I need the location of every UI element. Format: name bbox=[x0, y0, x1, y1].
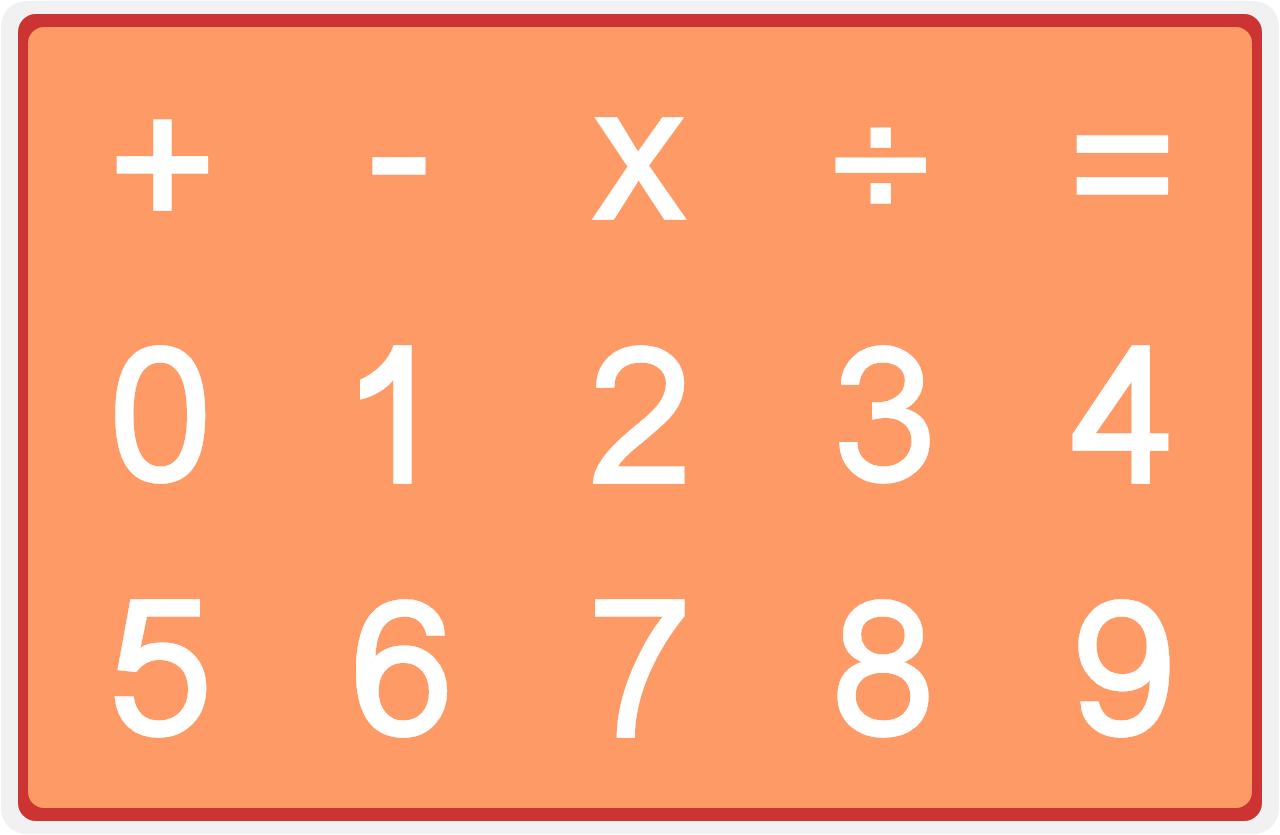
button[interactable]: Nine bbox=[1007, 548, 1252, 808]
button[interactable]: Multiply bbox=[517, 27, 762, 288]
button[interactable]: Two bbox=[517, 288, 762, 548]
button[interactable]: Plus bbox=[28, 27, 272, 288]
button[interactable]: Four bbox=[1007, 288, 1252, 548]
button[interactable]: Divide bbox=[762, 27, 1007, 288]
button[interactable]: Minus bbox=[272, 27, 517, 288]
button[interactable]: Seven bbox=[517, 548, 762, 808]
button[interactable]: Equals bbox=[1007, 27, 1252, 288]
button[interactable]: Zero bbox=[28, 288, 272, 548]
button[interactable]: Eight bbox=[762, 548, 1007, 808]
button[interactable]: Six bbox=[272, 548, 517, 808]
button[interactable]: Three bbox=[762, 288, 1007, 548]
button[interactable]: One bbox=[272, 288, 517, 548]
button[interactable]: Five bbox=[28, 548, 272, 808]
